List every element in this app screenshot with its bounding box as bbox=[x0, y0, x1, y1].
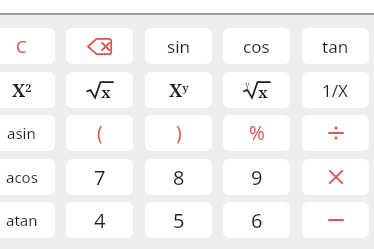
staticText: tan bbox=[322, 35, 349, 58]
button[interactable]: Backspace bbox=[66, 28, 133, 64]
button[interactable]: atan bbox=[0, 202, 55, 238]
staticText: 9 bbox=[251, 164, 263, 191]
button[interactable]: 7 bbox=[66, 159, 133, 195]
button[interactable]: % bbox=[223, 115, 290, 151]
button[interactable]: Minus bbox=[302, 202, 369, 238]
button[interactable]: 5 bbox=[145, 202, 212, 238]
staticText: C bbox=[16, 35, 27, 58]
staticText: acos bbox=[6, 167, 38, 187]
button[interactable]: 1/X bbox=[302, 72, 369, 108]
staticText: x bbox=[258, 82, 268, 102]
staticText: atan bbox=[6, 210, 38, 230]
staticText: ) bbox=[176, 120, 182, 146]
button[interactable]: sin bbox=[145, 28, 212, 64]
button[interactable]: x bbox=[223, 72, 290, 108]
button[interactable]: tan bbox=[302, 28, 369, 64]
staticText: X2 bbox=[12, 78, 32, 103]
button[interactable]: ( bbox=[66, 115, 133, 151]
other: Minus bbox=[326, 210, 346, 230]
button[interactable]: 6 bbox=[223, 202, 290, 238]
staticText: x bbox=[101, 82, 111, 102]
button[interactable]: 4 bbox=[66, 202, 133, 238]
button[interactable]: Multiply bbox=[302, 159, 369, 195]
staticText: Xy bbox=[169, 78, 189, 103]
staticText: ( bbox=[97, 120, 103, 146]
other: Multiply bbox=[326, 167, 346, 187]
button[interactable]: C bbox=[0, 28, 55, 64]
button[interactable]: Xy bbox=[145, 72, 212, 108]
button[interactable]: asin bbox=[0, 115, 55, 151]
button[interactable]: ) bbox=[145, 115, 212, 151]
other: Backspace bbox=[87, 37, 113, 56]
staticText: 6 bbox=[251, 207, 263, 234]
staticText: 5 bbox=[173, 207, 185, 234]
button[interactable]: 9 bbox=[223, 159, 290, 195]
button[interactable]: acos bbox=[0, 159, 55, 195]
button[interactable]: 8 bbox=[145, 159, 212, 195]
button[interactable]: cos bbox=[223, 28, 290, 64]
staticText: 1/X bbox=[322, 79, 349, 102]
staticText: sin bbox=[167, 35, 191, 58]
staticText: 4 bbox=[94, 207, 106, 234]
staticText: 7 bbox=[94, 164, 106, 191]
button[interactable]: Divide bbox=[302, 115, 369, 151]
staticText: asin bbox=[7, 123, 36, 143]
button[interactable]: X2 bbox=[0, 72, 55, 108]
staticText: % bbox=[249, 120, 265, 146]
button[interactable]: x bbox=[66, 72, 133, 108]
staticText: cos bbox=[243, 35, 270, 58]
staticText: 8 bbox=[173, 164, 185, 191]
other: Divide bbox=[326, 123, 346, 143]
staticText: y bbox=[245, 79, 250, 90]
